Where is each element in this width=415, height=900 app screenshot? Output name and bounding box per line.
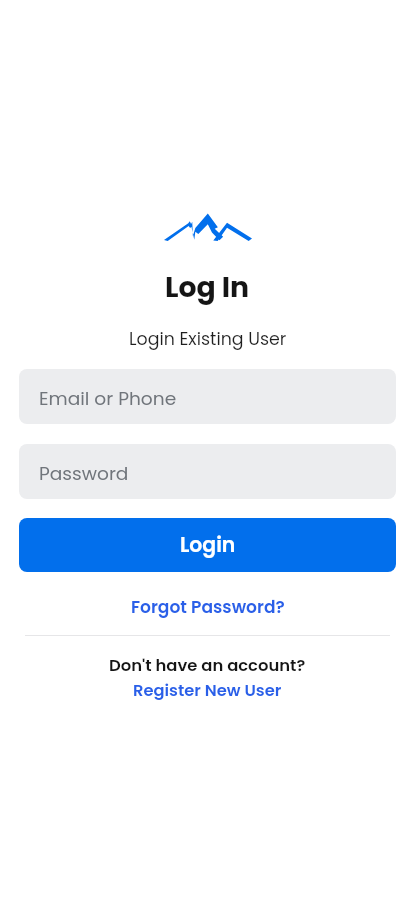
button[interactable]: Password [19, 444, 396, 499]
staticText: Email or Phone [39, 385, 177, 411]
button[interactable]: Register New User [125, 677, 290, 704]
staticText: Don't have an account? [109, 654, 306, 677]
button[interactable]: Forgot Password? [123, 592, 293, 622]
staticText: Password [39, 460, 129, 486]
staticText: Login Existing User [129, 327, 287, 351]
button[interactable]: Login [19, 518, 396, 572]
staticText: Log In [165, 267, 250, 307]
button[interactable]: Email or Phone [19, 369, 396, 424]
staticText: Forgot Password? [131, 595, 285, 619]
staticText: Login [180, 531, 236, 560]
staticText: Register New User [133, 679, 282, 702]
